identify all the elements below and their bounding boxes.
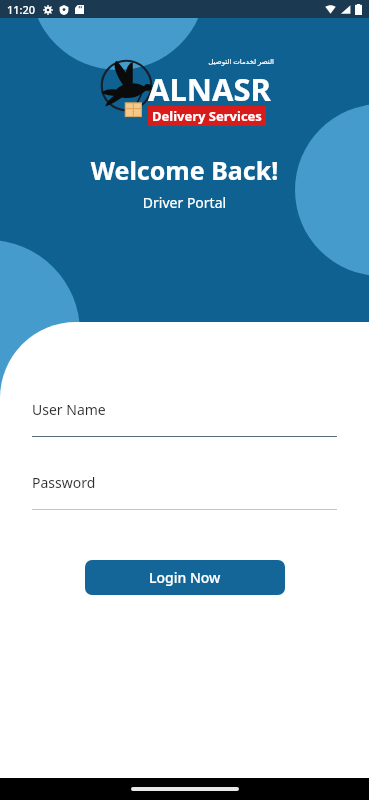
button[interactable]: User Name [32,400,337,437]
button[interactable]: Login Now [85,560,285,595]
staticText: Delivery Services [152,107,262,125]
staticText: النصر لخدمات التوصيل [208,57,274,67]
staticText: Driver Portal [0,193,369,212]
staticText: Login Now [149,568,221,587]
staticText: ALNASR [148,68,271,110]
staticText: User Name [32,400,106,419]
button[interactable]: Password [32,473,337,510]
staticText: 11:20 [7,2,36,17]
staticText: Password [32,473,96,492]
staticText: Welcome Back! [0,153,369,187]
